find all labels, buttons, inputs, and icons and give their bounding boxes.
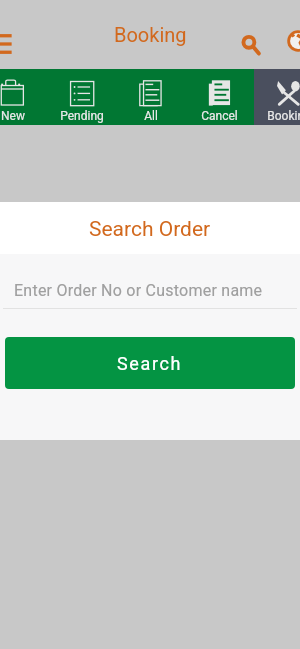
staticText: All [144,109,158,123]
button[interactable]: Booking [254,69,300,125]
button[interactable]: Open navigation menu [0,22,23,66]
button[interactable]: Search [228,19,271,62]
button[interactable]: All [116,69,185,125]
staticText: Enter Order No or Customer name [14,281,263,300]
staticText: Cancel [201,109,238,123]
staticText: Booking [114,23,187,46]
staticText: Search [117,353,183,374]
staticText: Search Order [89,217,211,242]
staticText: Pending [60,109,104,123]
button[interactable]: Language [276,19,300,62]
staticText: Booking [267,109,300,123]
staticText: New [1,109,25,123]
button[interactable]: Search [5,337,295,389]
button[interactable]: New [0,69,47,125]
button[interactable]: Cancel [185,69,254,125]
button[interactable]: Pending [47,69,116,125]
